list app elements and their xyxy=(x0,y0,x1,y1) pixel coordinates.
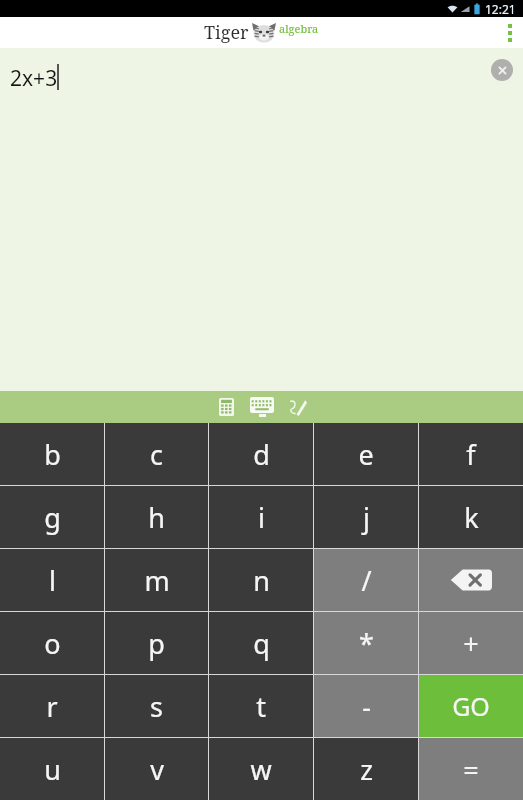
staticText: k xyxy=(464,499,479,536)
staticText: GO xyxy=(452,689,490,723)
staticText: e xyxy=(358,436,374,473)
staticText: g xyxy=(44,499,61,536)
button[interactable]: r xyxy=(0,675,104,737)
staticText: m xyxy=(144,562,170,599)
button[interactable]: p xyxy=(105,612,208,674)
staticText: / xyxy=(361,562,372,599)
button[interactable]: Clear input xyxy=(491,59,513,81)
staticText: 12:21 xyxy=(485,1,516,17)
staticText: l xyxy=(49,562,56,599)
button[interactable]: m xyxy=(105,549,208,611)
button[interactable]: b xyxy=(0,423,104,485)
button[interactable]: t xyxy=(209,675,313,737)
staticText: v xyxy=(150,751,164,788)
button[interactable]: h xyxy=(105,486,208,548)
button[interactable]: g xyxy=(0,486,104,548)
button[interactable]: i xyxy=(209,486,313,548)
staticText: q xyxy=(253,625,270,662)
staticText: z xyxy=(360,751,373,788)
staticText: b xyxy=(44,436,61,473)
button[interactable]: c xyxy=(105,423,208,485)
button[interactable]: = xyxy=(419,738,523,800)
button[interactable]: v xyxy=(105,738,208,800)
staticText: j xyxy=(363,499,370,536)
staticText: + xyxy=(463,625,479,662)
button[interactable]: Letter keyboard xyxy=(243,391,281,423)
staticText: Tiger xyxy=(204,20,249,45)
button[interactable]: - xyxy=(314,675,418,737)
button[interactable]: k xyxy=(419,486,523,548)
button[interactable]: More options xyxy=(497,17,523,48)
button[interactable]: e xyxy=(314,423,418,485)
button[interactable]: + xyxy=(419,612,523,674)
staticText: c xyxy=(150,436,163,473)
button[interactable]: / xyxy=(314,549,418,611)
staticText: n xyxy=(253,562,270,599)
button[interactable]: Backspace xyxy=(419,549,523,611)
button[interactable]: Calculator keypad xyxy=(209,391,243,423)
staticText: = xyxy=(463,751,479,788)
button[interactable]: GO xyxy=(419,675,523,737)
staticText: h xyxy=(148,499,165,536)
button[interactable]: * xyxy=(314,612,418,674)
staticText: o xyxy=(44,625,61,662)
button[interactable]: f xyxy=(419,423,523,485)
staticText: s xyxy=(150,688,163,725)
button[interactable]: Handwriting input xyxy=(281,391,315,423)
staticText: - xyxy=(362,688,371,725)
staticText: algebra xyxy=(279,21,319,36)
staticText: r xyxy=(46,688,58,725)
staticText: d xyxy=(253,436,270,473)
button[interactable]: w xyxy=(209,738,313,800)
staticText: p xyxy=(148,625,165,662)
staticText: u xyxy=(44,751,61,788)
staticText: f xyxy=(466,436,476,473)
button[interactable]: j xyxy=(314,486,418,548)
button[interactable]: s xyxy=(105,675,208,737)
button[interactable]: l xyxy=(0,549,104,611)
button[interactable]: d xyxy=(209,423,313,485)
staticText: t xyxy=(256,688,266,725)
button[interactable]: n xyxy=(209,549,313,611)
staticText: w xyxy=(250,751,272,788)
staticText: 2x+3 xyxy=(10,64,58,93)
button[interactable]: q xyxy=(209,612,313,674)
button[interactable]: o xyxy=(0,612,104,674)
button[interactable]: z xyxy=(314,738,418,800)
staticText: i xyxy=(258,499,265,536)
staticText: * xyxy=(359,625,374,662)
button[interactable]: u xyxy=(0,738,104,800)
